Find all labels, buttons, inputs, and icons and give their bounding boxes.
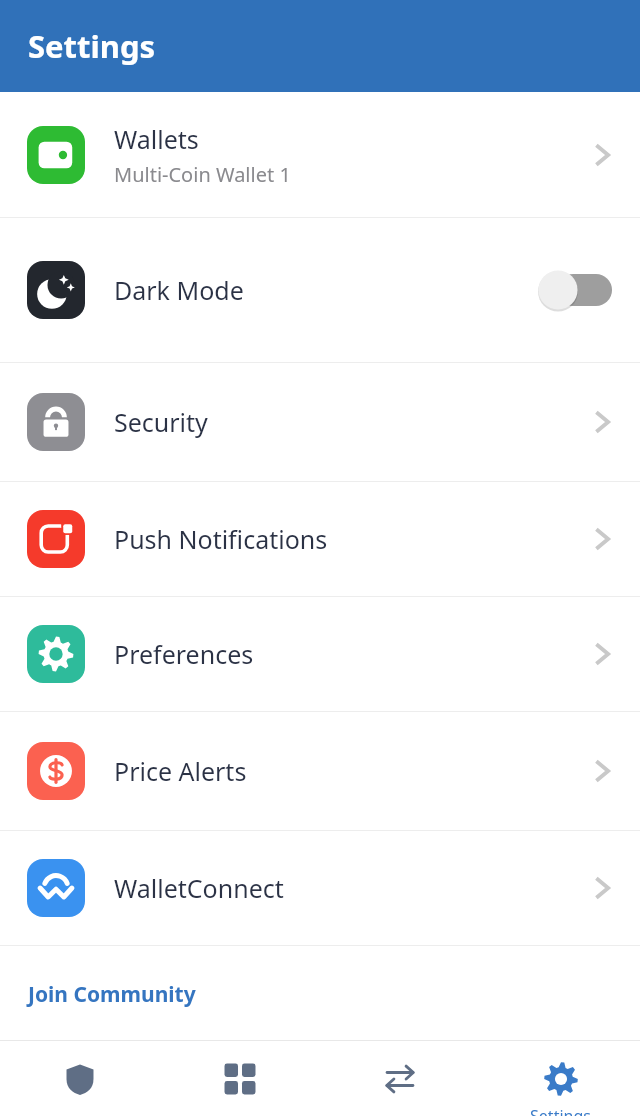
button[interactable] bbox=[538, 270, 612, 310]
button[interactable]: Shield bbox=[0, 1041, 160, 1116]
button[interactable]: Swap bbox=[320, 1041, 480, 1116]
staticText: Preferences bbox=[114, 637, 254, 671]
staticText: Wallets bbox=[114, 122, 199, 156]
button[interactable]: Push Notifications bbox=[0, 482, 640, 596]
staticText: Multi-Coin Wallet 1 bbox=[114, 161, 291, 188]
staticText: Price Alerts bbox=[114, 754, 247, 788]
button[interactable]: Price Alerts bbox=[0, 712, 640, 830]
button[interactable]: Preferences bbox=[0, 597, 640, 711]
button[interactable]: Settings bbox=[480, 1041, 640, 1116]
staticText: Security bbox=[114, 405, 208, 439]
staticText: Push Notifications bbox=[114, 522, 328, 556]
staticText: Settings bbox=[530, 1105, 591, 1116]
staticText: Dark Mode bbox=[114, 273, 244, 307]
button[interactable]: WalletConnect bbox=[0, 831, 640, 945]
button[interactable]: Apps bbox=[160, 1041, 320, 1116]
staticText: Join Community bbox=[28, 980, 196, 1009]
staticText: Settings bbox=[28, 25, 156, 67]
button[interactable]: Security bbox=[0, 363, 640, 481]
button[interactable]: Dark Mode bbox=[0, 218, 640, 362]
staticText: WalletConnect bbox=[114, 871, 284, 905]
button[interactable]: Join Community bbox=[0, 946, 640, 1040]
button[interactable]: Wallets bbox=[0, 92, 640, 217]
